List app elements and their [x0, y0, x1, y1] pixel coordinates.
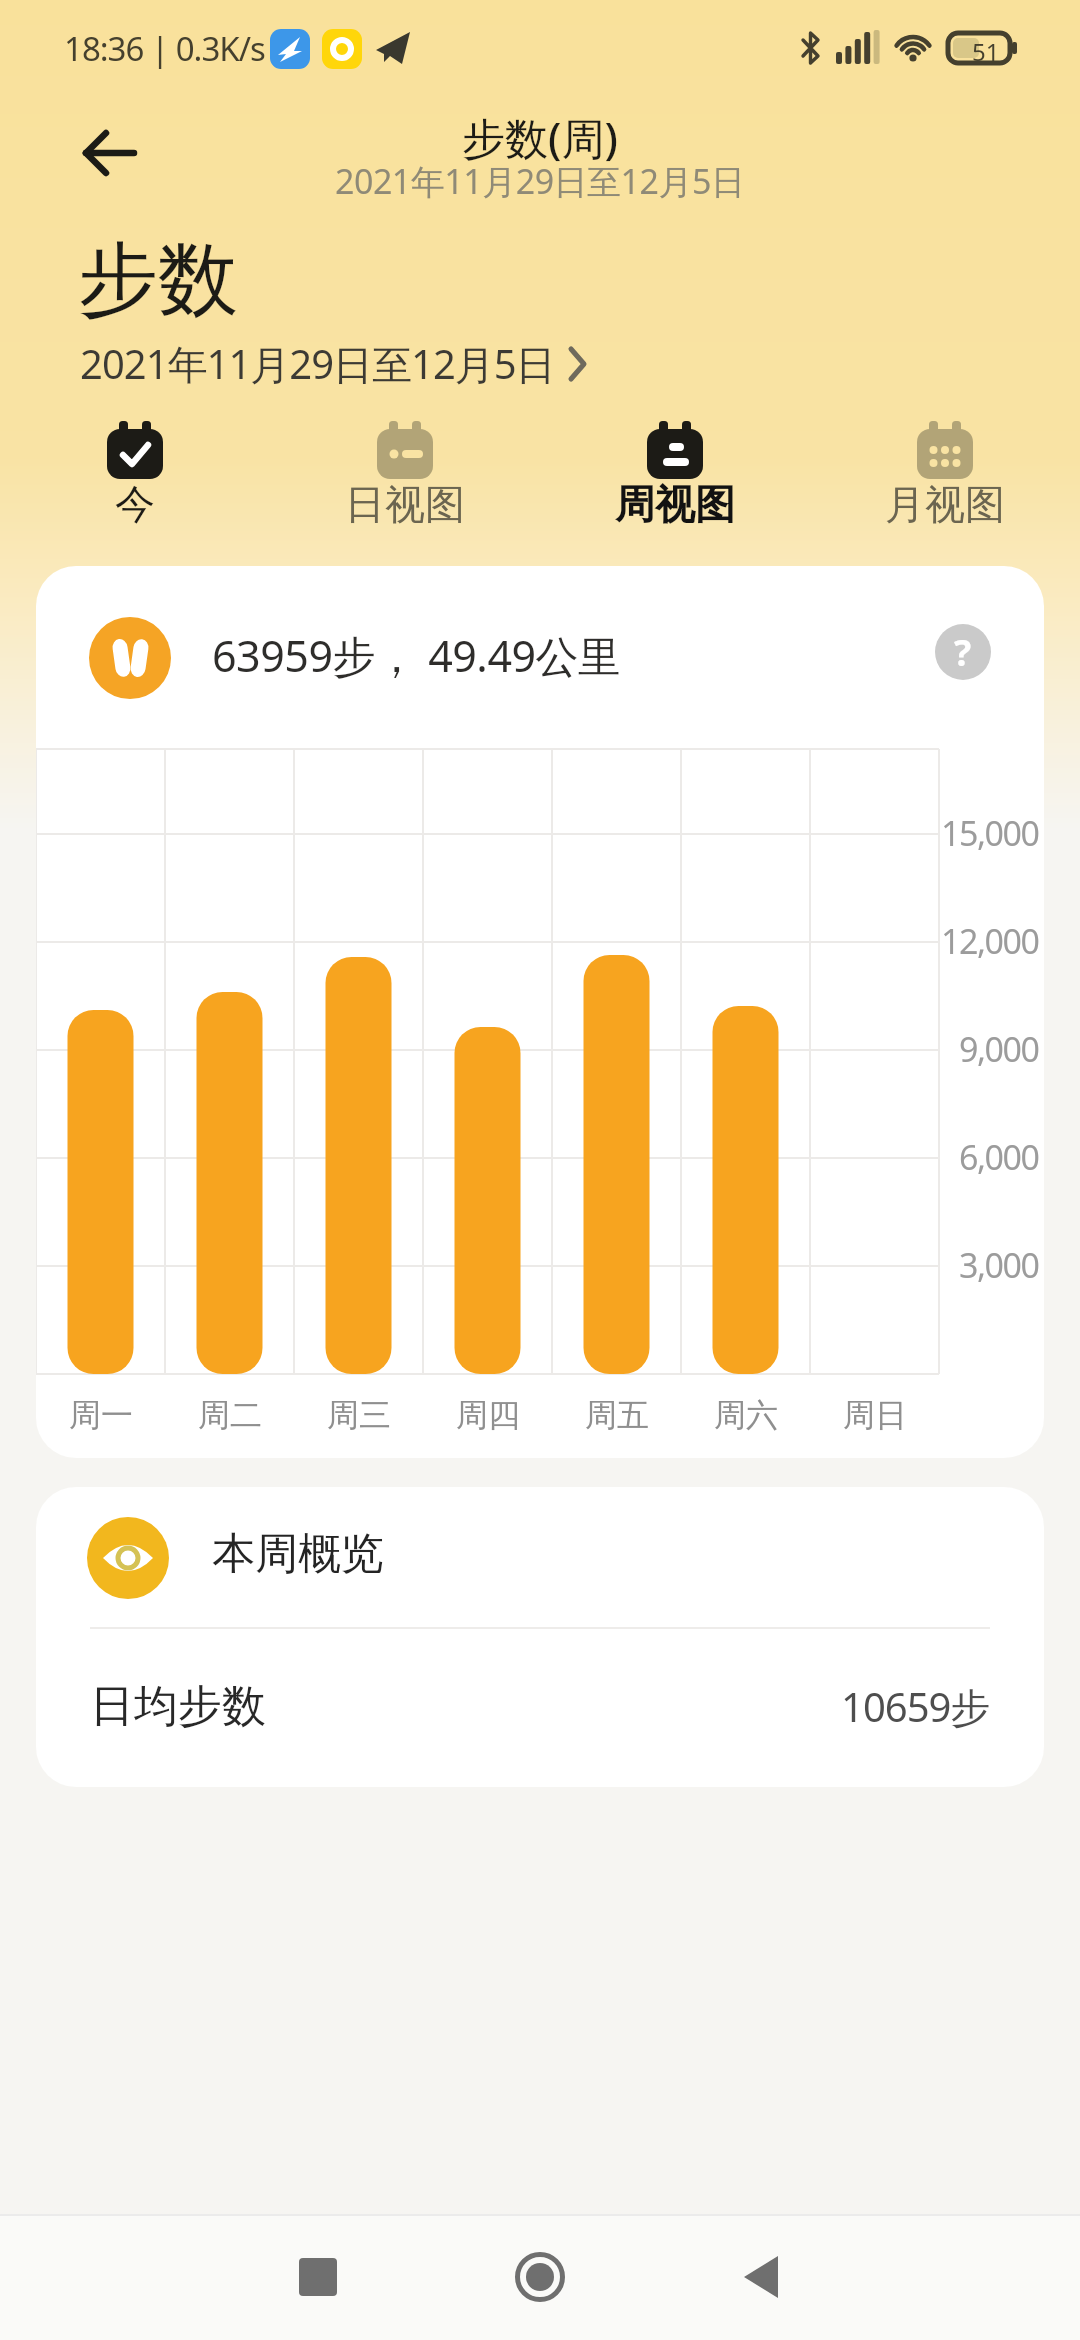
- staticText: 周二: [198, 1395, 262, 1435]
- staticText: 周四: [456, 1395, 520, 1435]
- staticText: 2021年11月29日至12月5日: [80, 336, 555, 391]
- staticText: 51: [972, 35, 1000, 68]
- staticText: 步数(周): [462, 108, 618, 167]
- button[interactable]: [515, 2252, 565, 2302]
- staticText: 周五: [585, 1395, 649, 1435]
- button[interactable]: ?: [935, 624, 991, 680]
- staticText: 12,000: [941, 918, 1039, 964]
- staticText: 周一: [69, 1395, 133, 1435]
- staticText: 周视图: [615, 479, 735, 529]
- staticText: 今: [115, 479, 155, 529]
- button[interactable]: 周视图: [540, 421, 810, 529]
- staticText: 周六: [714, 1395, 778, 1435]
- button[interactable]: 日均步数: [90, 1679, 990, 1734]
- staticText: 2021年11月29日至12月5日: [335, 158, 745, 204]
- staticText: 步数: [78, 230, 238, 331]
- staticText: 日均步数: [90, 1679, 266, 1734]
- staticText: 18:36 | 0.3K/s: [64, 26, 265, 71]
- button[interactable]: 月视图: [810, 421, 1080, 529]
- staticText: 本周概览: [212, 1527, 384, 1581]
- button[interactable]: 日视图: [270, 421, 540, 529]
- staticText: 日视图: [345, 479, 465, 529]
- button[interactable]: [299, 2258, 337, 2296]
- staticText: 月视图: [885, 479, 1005, 529]
- button[interactable]: 2021年11月29日至12月5日: [80, 336, 587, 391]
- staticText: 6,000: [959, 1134, 1039, 1180]
- staticText: 周日: [843, 1395, 907, 1435]
- button[interactable]: [742, 2256, 782, 2298]
- staticText: 10659步: [841, 1679, 990, 1734]
- button[interactable]: 今: [0, 421, 270, 529]
- staticText: 63959步， 49.49公里: [212, 626, 621, 685]
- staticText: 15,000: [941, 810, 1039, 856]
- staticText: 周三: [327, 1395, 391, 1435]
- staticText: 3,000: [959, 1242, 1039, 1288]
- staticText: ?: [954, 628, 972, 677]
- staticText: 9,000: [959, 1026, 1039, 1072]
- button[interactable]: [84, 130, 136, 176]
